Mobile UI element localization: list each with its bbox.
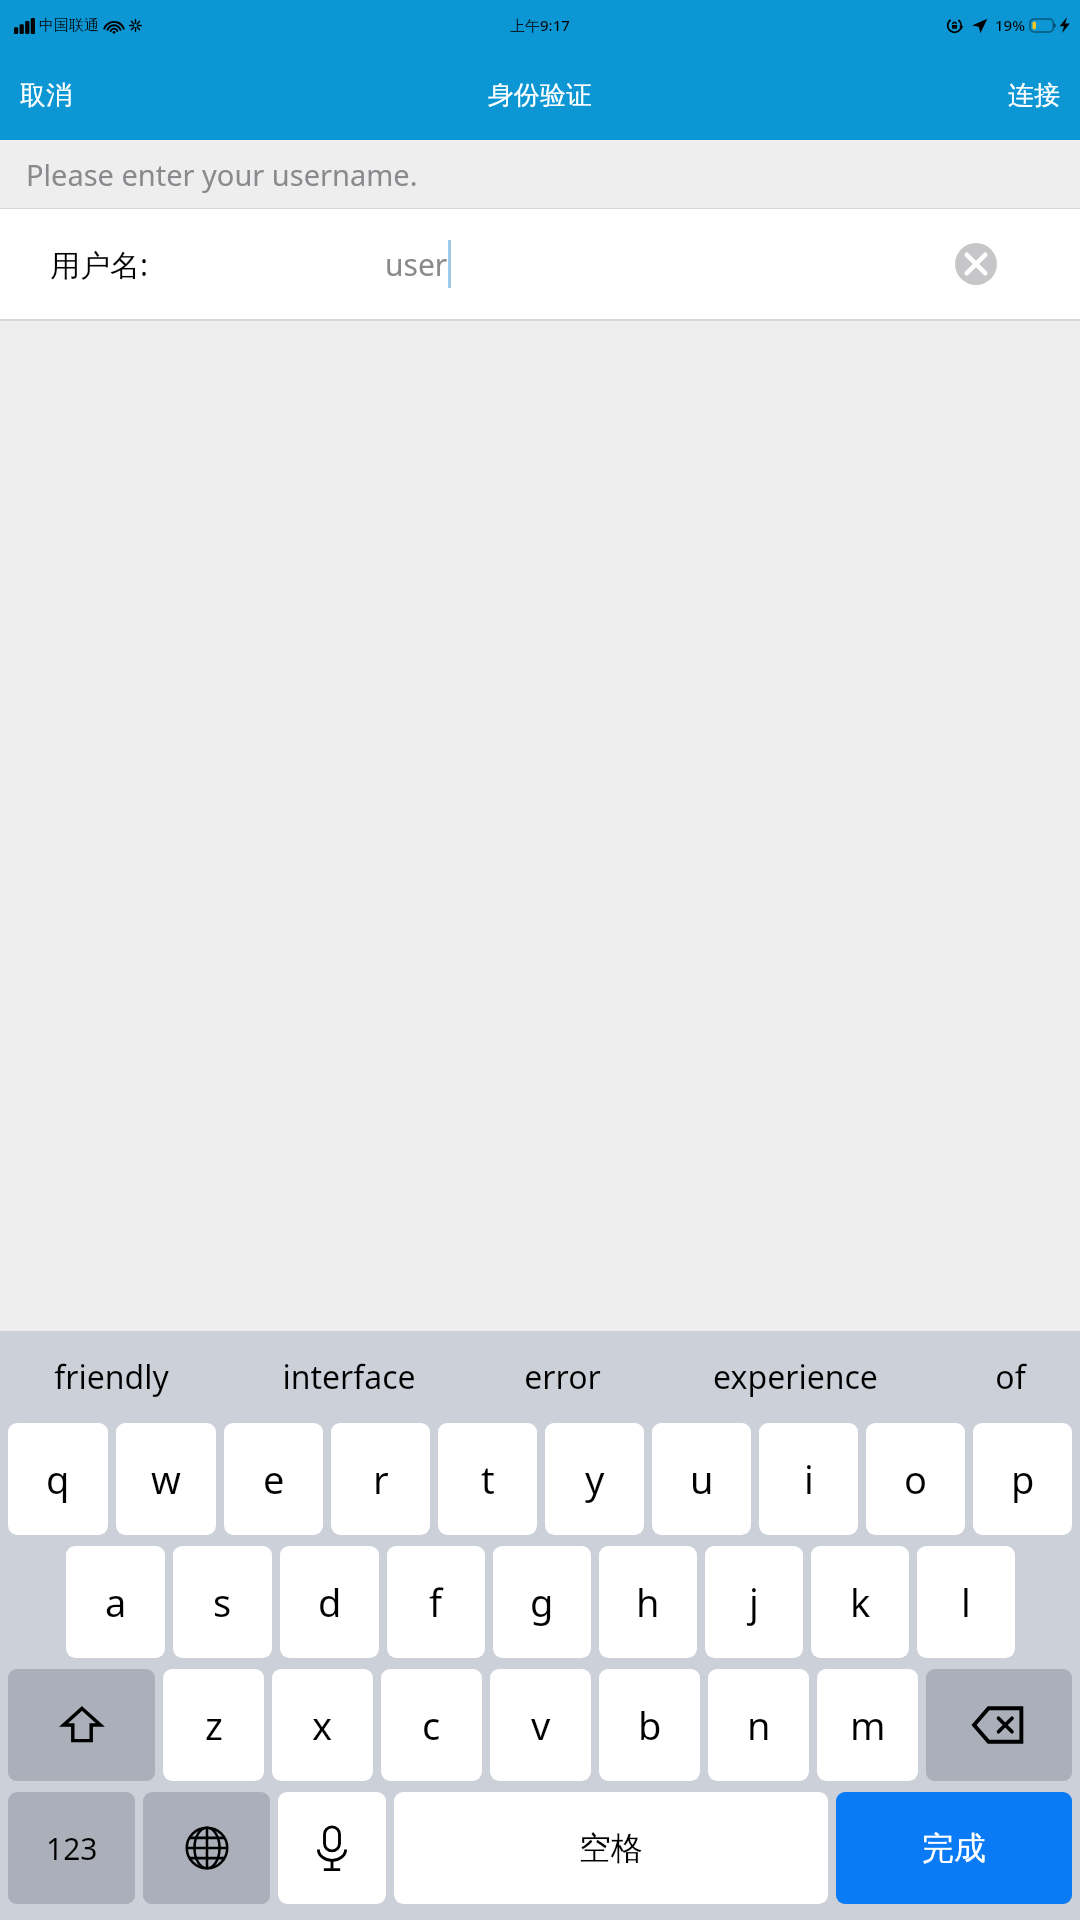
button[interactable]: friendly	[0, 1331, 223, 1423]
button[interactable]: v	[490, 1669, 591, 1781]
staticText: v	[531, 1699, 551, 1751]
button[interactable]: of	[940, 1331, 1080, 1423]
staticText: 用户名:	[50, 244, 149, 285]
staticText: a	[105, 1576, 127, 1628]
button[interactable]: 空格	[394, 1792, 828, 1904]
button[interactable]: 用户名:	[0, 209, 1080, 319]
button[interactable]: 完成	[836, 1792, 1072, 1904]
button[interactable]: 取消	[0, 65, 92, 126]
button[interactable]: 连接	[988, 65, 1080, 126]
button[interactable]: a	[66, 1546, 165, 1658]
button[interactable]: y	[545, 1423, 644, 1535]
button[interactable]: e	[224, 1423, 323, 1535]
staticText: o	[904, 1453, 927, 1505]
button[interactable]: p	[973, 1423, 1072, 1535]
button[interactable]: Clear text	[954, 242, 998, 286]
staticText: experience	[713, 1355, 878, 1399]
button[interactable]: z	[163, 1669, 264, 1781]
button[interactable]: w	[116, 1423, 216, 1535]
button[interactable]: d	[280, 1546, 379, 1658]
staticText: error	[524, 1355, 601, 1399]
other: Backspace	[926, 1669, 1072, 1781]
staticText: c	[422, 1699, 441, 1751]
staticText: 中国联通	[39, 16, 99, 35]
staticText: j	[749, 1576, 759, 1628]
button[interactable]: q	[8, 1423, 108, 1535]
staticText: u	[690, 1453, 714, 1505]
other: Shift	[8, 1669, 155, 1781]
staticText: interface	[282, 1355, 416, 1399]
staticText: b	[638, 1699, 662, 1751]
button[interactable]: f	[387, 1546, 485, 1658]
staticText: of	[995, 1355, 1026, 1399]
staticText: 空格	[579, 1828, 643, 1868]
button[interactable]: l	[917, 1546, 1015, 1658]
staticText: d	[318, 1576, 342, 1628]
button[interactable]: j	[705, 1546, 803, 1658]
staticText: q	[46, 1453, 70, 1505]
staticText: l	[961, 1576, 971, 1628]
staticText: f	[429, 1576, 443, 1628]
button[interactable]	[8, 1669, 155, 1781]
button[interactable]	[926, 1669, 1072, 1781]
staticText: x	[312, 1699, 333, 1751]
staticText: 123	[46, 1828, 98, 1869]
staticText: i	[804, 1453, 814, 1505]
staticText: 19%	[995, 15, 1025, 35]
staticText: w	[151, 1453, 181, 1505]
button[interactable]: experience	[651, 1331, 940, 1423]
staticText: k	[850, 1576, 871, 1628]
button[interactable]: n	[708, 1669, 809, 1781]
staticText: e	[263, 1453, 285, 1505]
staticText: 连接	[1008, 79, 1060, 112]
button[interactable]: 123	[8, 1792, 135, 1904]
staticText: h	[636, 1576, 660, 1628]
staticText: p	[1011, 1453, 1035, 1505]
other: Switch keyboard language	[143, 1792, 270, 1904]
staticText: t	[481, 1453, 495, 1505]
button[interactable]: t	[438, 1423, 537, 1535]
button[interactable]: interface	[223, 1331, 474, 1423]
staticText: 取消	[20, 79, 72, 112]
button[interactable]: o	[866, 1423, 965, 1535]
staticText: friendly	[54, 1355, 169, 1399]
staticText: 完成	[922, 1828, 986, 1868]
staticText: z	[205, 1699, 223, 1751]
button[interactable]: error	[474, 1331, 651, 1423]
staticText: m	[850, 1699, 886, 1751]
staticText: Please enter your username.	[26, 155, 418, 194]
staticText: user	[385, 244, 448, 285]
button[interactable]	[278, 1792, 386, 1904]
button[interactable]: b	[599, 1669, 700, 1781]
button[interactable]: x	[272, 1669, 373, 1781]
staticText: s	[213, 1576, 232, 1628]
other: Dictation	[278, 1792, 386, 1904]
staticText: g	[530, 1576, 554, 1628]
staticText: n	[747, 1699, 771, 1751]
button[interactable]: i	[759, 1423, 858, 1535]
button[interactable]: u	[652, 1423, 751, 1535]
button[interactable]: c	[381, 1669, 482, 1781]
staticText: r	[373, 1453, 389, 1505]
button[interactable]: g	[493, 1546, 591, 1658]
staticText: 身份验证	[488, 79, 592, 112]
button[interactable]	[143, 1792, 270, 1904]
staticText: 上午9:17	[510, 15, 570, 35]
button[interactable]: h	[599, 1546, 697, 1658]
button[interactable]: m	[817, 1669, 918, 1781]
button[interactable]: r	[331, 1423, 430, 1535]
button[interactable]: s	[173, 1546, 272, 1658]
button[interactable]: k	[811, 1546, 909, 1658]
staticText: y	[585, 1453, 605, 1505]
